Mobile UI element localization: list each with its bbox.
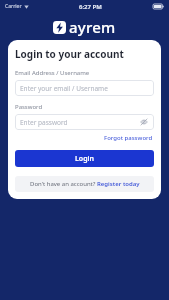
staticText: Register today [97,180,140,188]
staticText: Password [15,103,43,111]
staticText: Login [75,154,94,164]
button[interactable]: Show password [139,117,149,127]
staticText: Enter password [20,118,139,127]
staticText: Email Address / Username [15,69,90,77]
staticText: Don't have an account? [30,180,97,188]
button[interactable]: Login [15,150,154,167]
staticText: Login to your account [15,47,124,61]
button[interactable]: Don't have an account? [15,176,154,192]
button[interactable]: Enter password [15,114,154,130]
staticText: ayrem [69,17,116,37]
button[interactable]: Enter your email / Username [15,80,154,96]
staticText: 6:27 PM [79,3,102,11]
staticText: Enter your email / Username [20,84,149,93]
staticText: Carrier [5,3,22,10]
button[interactable]: Forgot password [103,133,154,143]
staticText: Forgot password [104,134,153,142]
